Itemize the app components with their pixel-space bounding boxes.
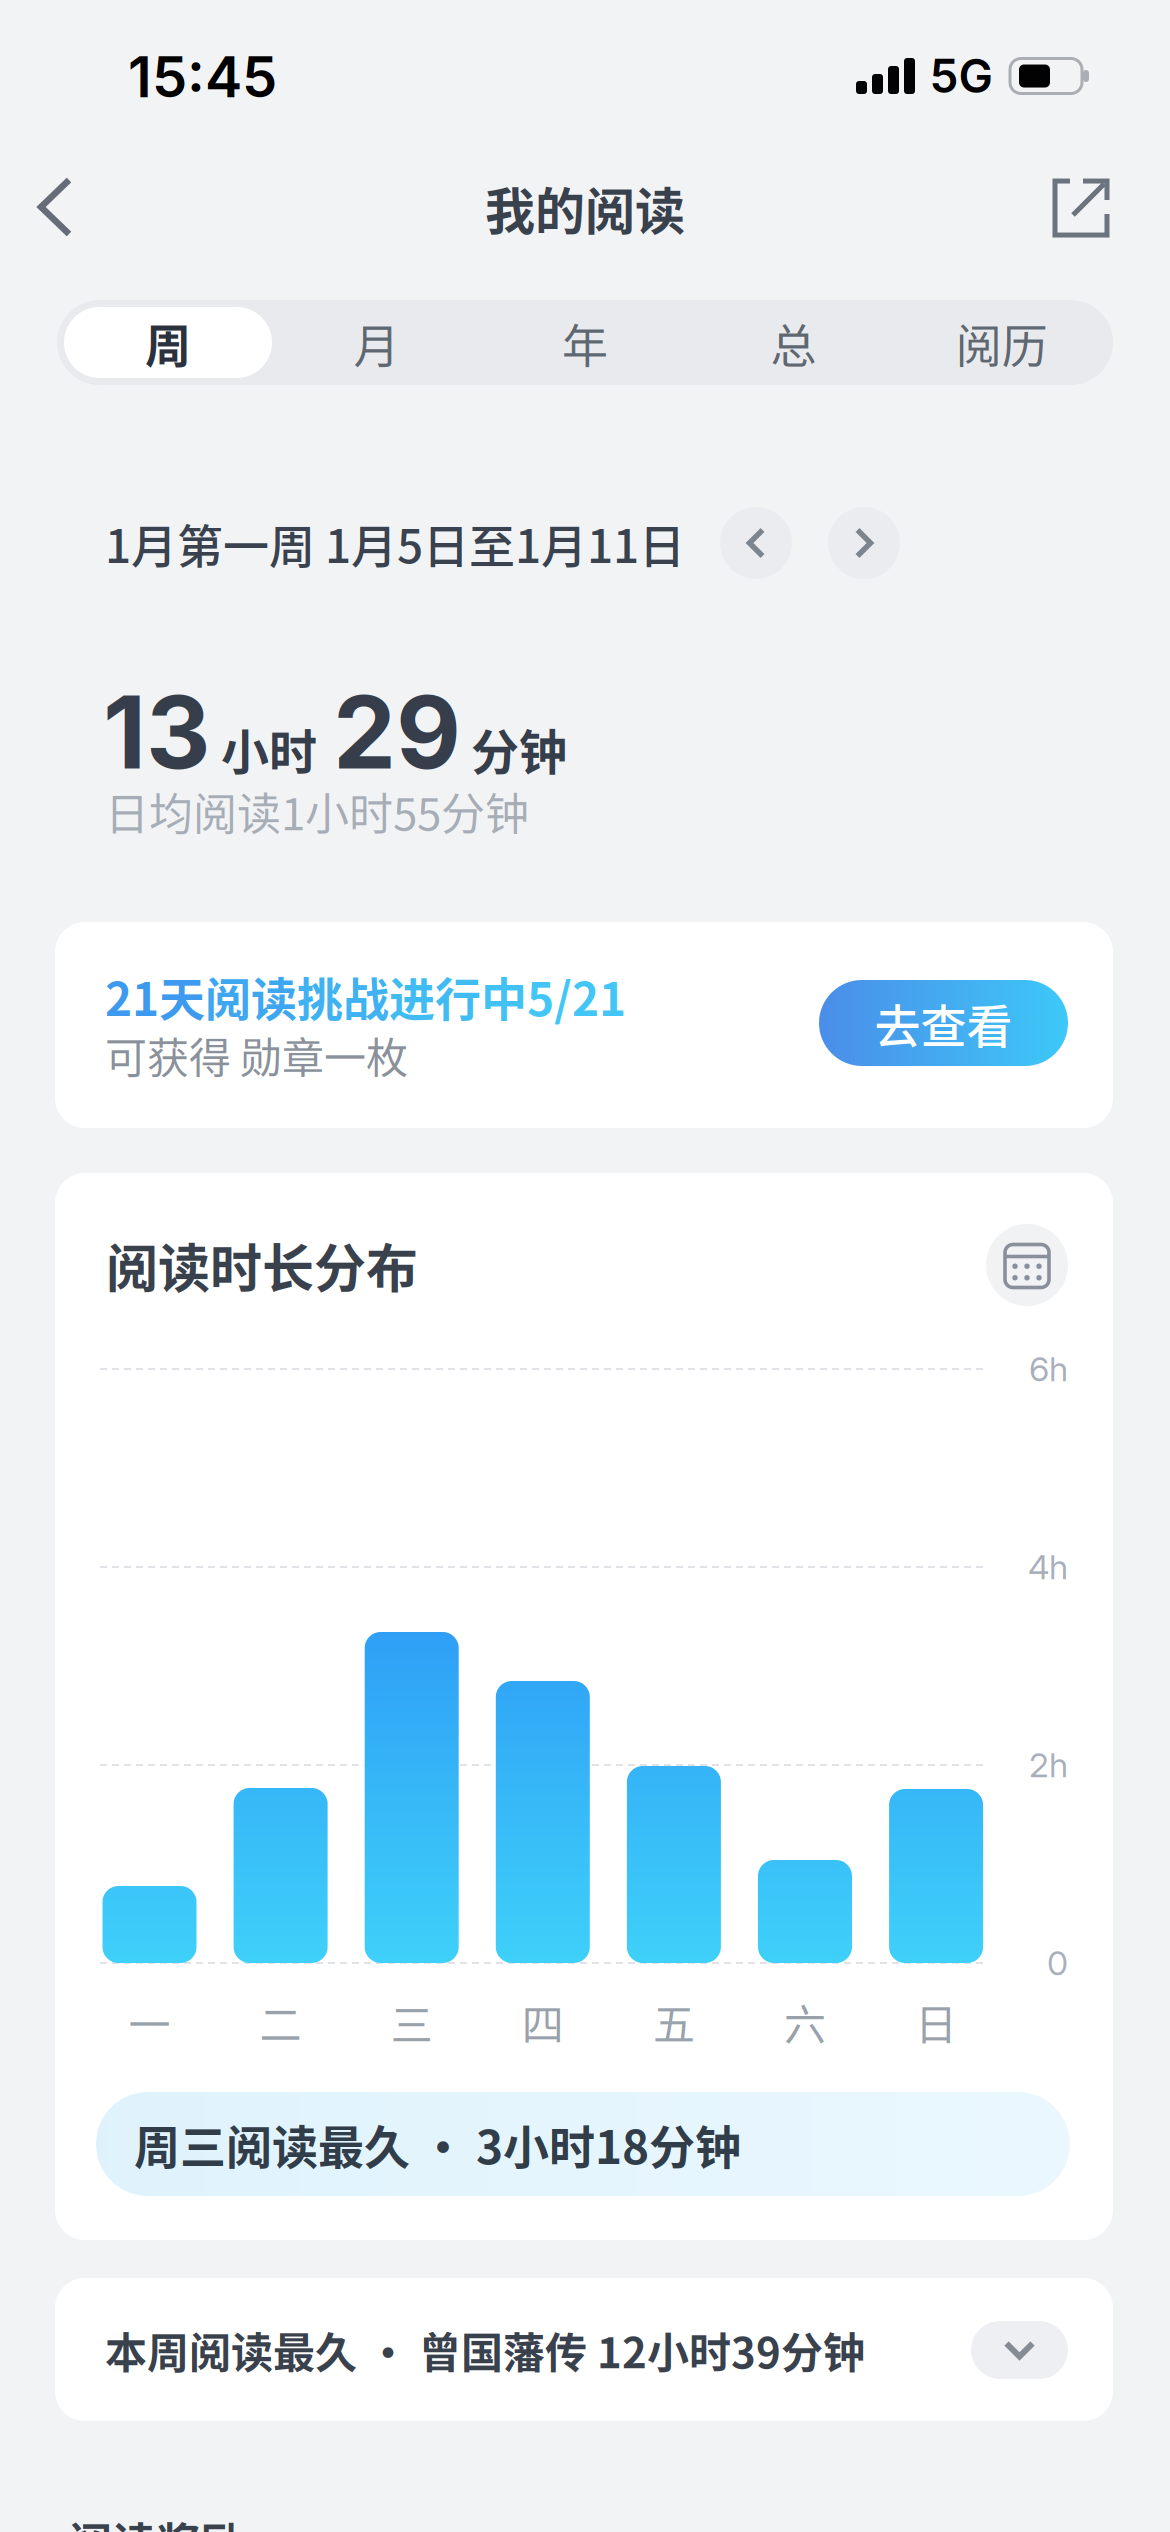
staticText: 我的阅读 — [485, 172, 685, 244]
staticText: 总 — [770, 309, 816, 376]
staticText: 小时 — [221, 714, 317, 783]
staticText: 15:45 — [128, 43, 277, 111]
staticText: 日均阅读1小时55分钟 — [105, 779, 529, 843]
staticText: 日 — [915, 1992, 957, 2052]
staticText: 4h — [1028, 1546, 1068, 1587]
button[interactable]: 阅历 — [898, 307, 1106, 378]
staticText: 21天 — [105, 963, 205, 1029]
button[interactable]: Expand — [971, 2321, 1068, 2379]
staticText: 一 — [128, 1992, 170, 2052]
staticText: 中 — [481, 963, 527, 1029]
staticText: 阅读时长分布 — [106, 1227, 418, 1303]
staticText: 1月第一周 1月5日至1月11日 — [105, 510, 685, 576]
button[interactable]: Share — [1050, 178, 1110, 238]
staticText: 挑战 — [297, 963, 389, 1029]
staticText: 阅历 — [956, 309, 1048, 376]
staticText: 去查看 — [874, 990, 1012, 1056]
staticText: 29 — [333, 671, 461, 792]
staticText: 分钟 — [471, 714, 567, 783]
staticText: 本周阅读最久 · 曾国藩传 12小时39分钟 — [105, 2320, 865, 2380]
staticText: 6h — [1029, 1348, 1068, 1389]
staticText: 周 — [145, 309, 191, 376]
button[interactable]: Previous week — [720, 507, 792, 579]
staticText: 二 — [260, 1992, 302, 2052]
staticText: 2h — [1029, 1744, 1068, 1785]
staticText: 阅读奖励 — [68, 2509, 244, 2532]
staticText: 四 — [522, 1992, 564, 2052]
button[interactable]: Back — [33, 174, 77, 240]
button[interactable]: 月 — [273, 307, 481, 378]
staticText: 可获得 勋章一枚 — [105, 1025, 408, 1085]
button[interactable]: 周 — [64, 307, 272, 378]
staticText: 年 — [562, 309, 608, 376]
button[interactable]: 年 — [481, 307, 689, 378]
staticText: 5G — [929, 48, 992, 104]
staticText: 五 — [653, 1992, 695, 2052]
staticText: 0 — [1047, 1942, 1068, 1983]
staticText: 进行 — [389, 963, 481, 1029]
staticText: 5/21 — [527, 963, 626, 1029]
button[interactable]: 去查看 — [819, 980, 1068, 1066]
staticText: 阅读 — [205, 963, 297, 1029]
staticText: 六 — [784, 1992, 826, 2052]
button[interactable]: Calendar — [986, 1224, 1068, 1306]
staticText: 月 — [354, 309, 400, 376]
staticText: 周三阅读最久 · 3小时18分钟 — [134, 2111, 741, 2177]
staticText: 三 — [391, 1992, 433, 2052]
staticText: 13 — [103, 671, 211, 792]
button[interactable]: 总 — [689, 307, 897, 378]
button[interactable]: Next week — [828, 507, 900, 579]
